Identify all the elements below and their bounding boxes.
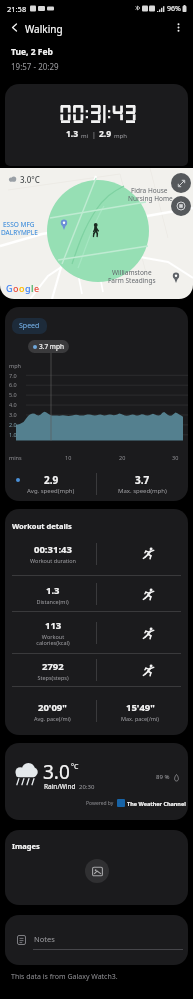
- staticText: 4.0: [9, 401, 17, 408]
- staticText: 96%: [167, 4, 181, 14]
- staticText: Fidra House: [131, 186, 168, 195]
- button[interactable]: 1.3: [5, 576, 188, 612]
- staticText: Distance(mi): [36, 598, 69, 605]
- staticText: Rain/Wind: [44, 782, 76, 791]
- staticText: 10: [65, 454, 72, 461]
- staticText: Farm Steadings: [108, 276, 156, 285]
- staticText: 3.0°C: [20, 174, 40, 185]
- staticText: ESSO MFG: [3, 220, 35, 229]
- button[interactable]: More options: [168, 17, 188, 37]
- staticText: 1.3: [66, 128, 79, 140]
- staticText: °C: [71, 762, 79, 772]
- button[interactable]: Speed: [12, 318, 47, 334]
- staticText: Workout details: [12, 521, 72, 531]
- staticText: 113: [45, 619, 62, 632]
- staticText: mph: [9, 362, 21, 369]
- staticText: l: [31, 282, 34, 294]
- button[interactable]: Back: [4, 17, 24, 37]
- staticText: 2.0: [9, 421, 17, 428]
- staticText: 1.3: [46, 584, 60, 597]
- staticText: 5.0: [9, 391, 17, 398]
- staticText: Workout duration: [30, 557, 76, 564]
- staticText: 20: [119, 454, 126, 461]
- staticText: Williamstone: [112, 268, 152, 277]
- staticText: mph: [114, 132, 128, 140]
- button[interactable]: Map layers: [171, 196, 191, 216]
- staticText: 19:57 - 20:29: [11, 61, 59, 72]
- button[interactable]: 00:31:43: [5, 531, 188, 576]
- staticText: o: [19, 282, 25, 294]
- staticText: 00:31:43: [34, 543, 72, 556]
- staticText: Notes: [34, 934, 55, 944]
- staticText: o: [13, 282, 19, 294]
- button[interactable]: Notes: [5, 915, 188, 965]
- staticText: G: [6, 282, 13, 294]
- staticText: e: [34, 282, 40, 294]
- staticText: mins: [9, 454, 22, 461]
- staticText: 2.9: [44, 473, 59, 487]
- staticText: Tue, 2 Feb: [11, 46, 53, 58]
- staticText: |: [92, 130, 96, 140]
- staticText: The Weather Channel: [127, 800, 186, 807]
- button[interactable]: 20'09": [9, 687, 96, 735]
- staticText: Workout calories(kcal): [36, 633, 70, 647]
- staticText: 6.0: [9, 381, 17, 388]
- staticText: 1.0: [9, 431, 17, 438]
- button[interactable]: Expand map: [171, 173, 191, 193]
- staticText: mi: [81, 132, 89, 140]
- staticText: 3.7 mph: [39, 342, 64, 351]
- staticText: Avg. speed(mph): [27, 487, 75, 495]
- staticText: 2.9: [99, 128, 112, 140]
- staticText: g: [25, 282, 31, 294]
- staticText: 3.0: [9, 411, 17, 418]
- staticText: 89 %: [156, 773, 170, 781]
- staticText: Powered by: [86, 800, 114, 807]
- staticText: 20:30: [79, 783, 95, 791]
- staticText: 20'09": [38, 701, 67, 714]
- staticText: 30: [172, 454, 179, 461]
- staticText: Steps(steps): [37, 674, 69, 681]
- staticText: 3.0: [43, 759, 70, 785]
- staticText: 3.7: [135, 473, 150, 487]
- button[interactable]: Add image: [85, 859, 109, 883]
- staticText: Images: [12, 841, 40, 851]
- button[interactable]: 113: [5, 612, 188, 654]
- staticText: Nursing Home: [128, 194, 173, 203]
- button[interactable]: 2792: [5, 653, 188, 687]
- staticText: 15'49": [126, 701, 155, 714]
- staticText: 21:58: [7, 4, 27, 14]
- staticText: Max. pace(/mi): [121, 715, 160, 722]
- staticText: This data is from Galaxy Watch3.: [11, 972, 118, 982]
- staticText: Speed: [19, 321, 40, 331]
- staticText: Max. speed(mph): [118, 487, 167, 495]
- staticText: DALRYMPLE: [1, 228, 38, 237]
- staticText: Walking: [25, 22, 63, 36]
- staticText: 7.0: [9, 372, 17, 379]
- staticText: 2792: [42, 660, 64, 673]
- button[interactable]: 15'49": [97, 687, 184, 735]
- staticText: Avg. pace(/mi): [34, 715, 71, 722]
